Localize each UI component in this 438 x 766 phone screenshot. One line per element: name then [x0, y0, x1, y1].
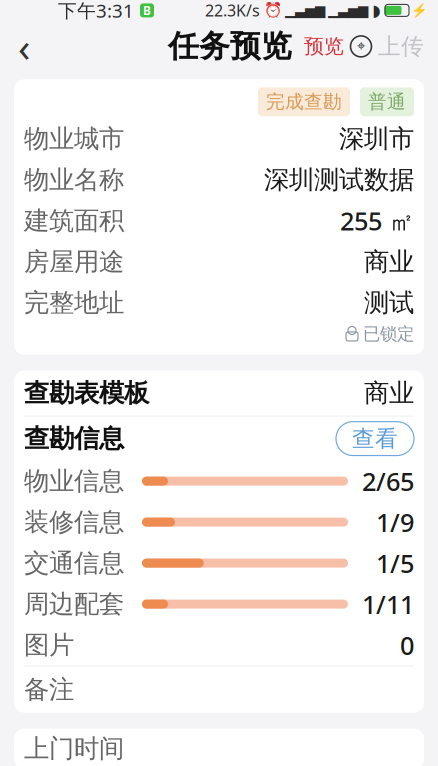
button[interactable]: 查看 — [336, 422, 414, 455]
staticText: ‹ — [18, 20, 30, 73]
staticText: ⏰ — [264, 2, 282, 19]
staticText: 22.3K/s — [205, 0, 260, 21]
staticText: ◗ — [372, 1, 380, 19]
staticText: ▁▃▅▆ — [328, 3, 368, 18]
staticText: ⚡ — [411, 3, 428, 18]
staticText: 查看 — [352, 425, 398, 452]
staticText: 物业信息 — [24, 466, 124, 497]
staticText: 普通 — [368, 90, 406, 113]
staticText: 建筑面积 — [24, 205, 124, 236]
staticText: 备注 — [24, 674, 74, 705]
button[interactable]: 历史记录 — [344, 29, 378, 63]
staticText: 已锁定 — [363, 323, 414, 345]
staticText: ⌖ — [357, 39, 365, 53]
staticText: 1/11 — [362, 587, 414, 621]
staticText: 上门时间 — [24, 733, 124, 764]
staticText: ▁▃▅▆ — [285, 3, 325, 18]
staticText: 上传 — [378, 32, 424, 60]
staticText: 下午3:31 — [58, 0, 134, 23]
staticText: 装修信息 — [24, 507, 124, 538]
button[interactable]: 预览 — [292, 34, 344, 59]
staticText: 1/9 — [376, 505, 414, 539]
staticText: 0 — [400, 628, 414, 662]
staticText: 深圳测试数据 — [264, 164, 414, 195]
staticText: 周边配套 — [24, 589, 124, 620]
button[interactable]: 上传 — [378, 32, 438, 60]
staticText: 查勘信息 — [24, 423, 124, 454]
staticText: 物业城市 — [24, 123, 124, 154]
staticText: 2/65 — [362, 464, 414, 498]
staticText: 商业 — [364, 378, 414, 409]
staticText: 物业名称 — [24, 164, 124, 195]
staticText: 房屋用途 — [24, 246, 124, 277]
staticText: 图片 — [24, 630, 74, 661]
staticText: 深圳市 — [339, 123, 414, 154]
staticText: 完成查勘 — [266, 90, 342, 113]
staticText: 完整地址 — [24, 287, 124, 318]
staticText: 查勘表模板 — [24, 378, 149, 409]
staticText: 1/5 — [376, 546, 414, 580]
staticText: 255 ㎡ — [340, 204, 414, 238]
staticText: 测试 — [364, 287, 414, 318]
button[interactable]: 返回 — [0, 24, 48, 68]
staticText: B — [143, 2, 151, 18]
staticText: 交通信息 — [24, 548, 124, 579]
staticText: 商业 — [364, 246, 414, 277]
staticText: 任务预览 — [168, 28, 292, 65]
staticText: 预览 — [304, 34, 344, 59]
